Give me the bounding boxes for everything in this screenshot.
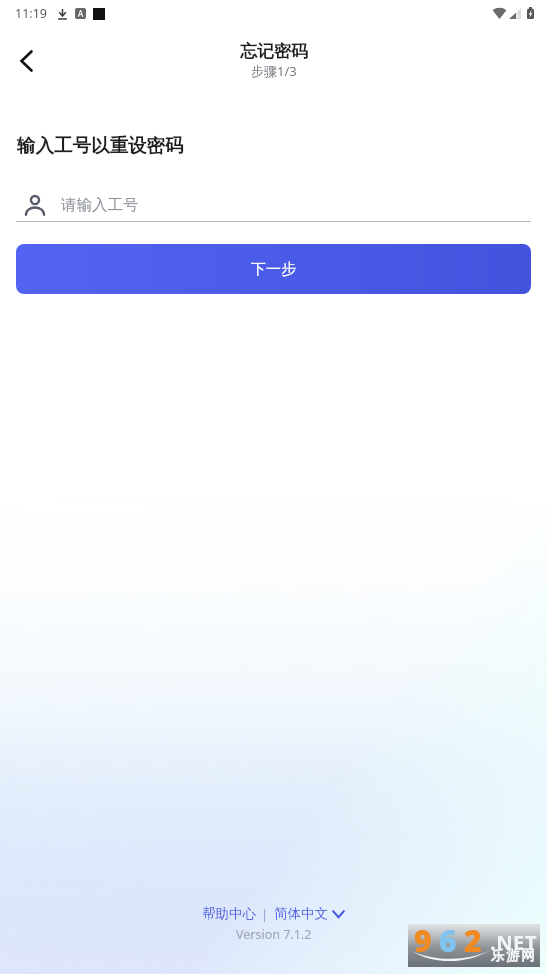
staticText: .NET: [490, 929, 538, 956]
staticText: |: [261, 905, 269, 923]
staticText: 帮助中心: [202, 905, 256, 922]
staticText: A: [78, 8, 84, 19]
staticText: Version 7.1.2: [236, 926, 312, 943]
staticText: 简体中文: [274, 905, 328, 922]
staticText: 忘记密码: [240, 41, 308, 62]
staticText: 下一步: [251, 260, 296, 279]
button[interactable]: 帮助中心: [202, 903, 256, 924]
staticText: 步骤1/3: [251, 62, 297, 80]
staticText: 11:19: [15, 5, 47, 22]
staticText: 2: [464, 920, 484, 961]
button[interactable]: Back: [2, 37, 50, 85]
button[interactable]: 下一步: [16, 244, 531, 294]
staticText: 9: [414, 920, 434, 961]
staticText: 乐游网: [491, 947, 537, 964]
staticText: 输入工号以重设密码: [17, 134, 184, 157]
button[interactable]: 简体中文: [274, 903, 345, 924]
staticText: 请输入工号: [61, 195, 139, 215]
staticText: 6: [439, 920, 459, 961]
button[interactable]: 请输入工号: [16, 190, 531, 220]
